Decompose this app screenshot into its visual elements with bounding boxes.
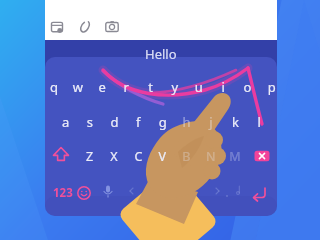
- button[interactable]: Delete: [250, 146, 274, 166]
- button[interactable]: Camera: [103, 14, 123, 34]
- button[interactable]: Emoji: [75, 183, 95, 203]
- button[interactable]: Shift: [50, 146, 72, 166]
- button[interactable]: Attach file: [76, 14, 96, 34]
- button[interactable]: New note: [48, 14, 68, 34]
- button[interactable]: Voice input: [99, 182, 119, 202]
- button[interactable]: Numbers: [52, 183, 76, 203]
- button[interactable]: Enter: [248, 183, 272, 203]
- button[interactable]: [45, 40, 277, 67]
